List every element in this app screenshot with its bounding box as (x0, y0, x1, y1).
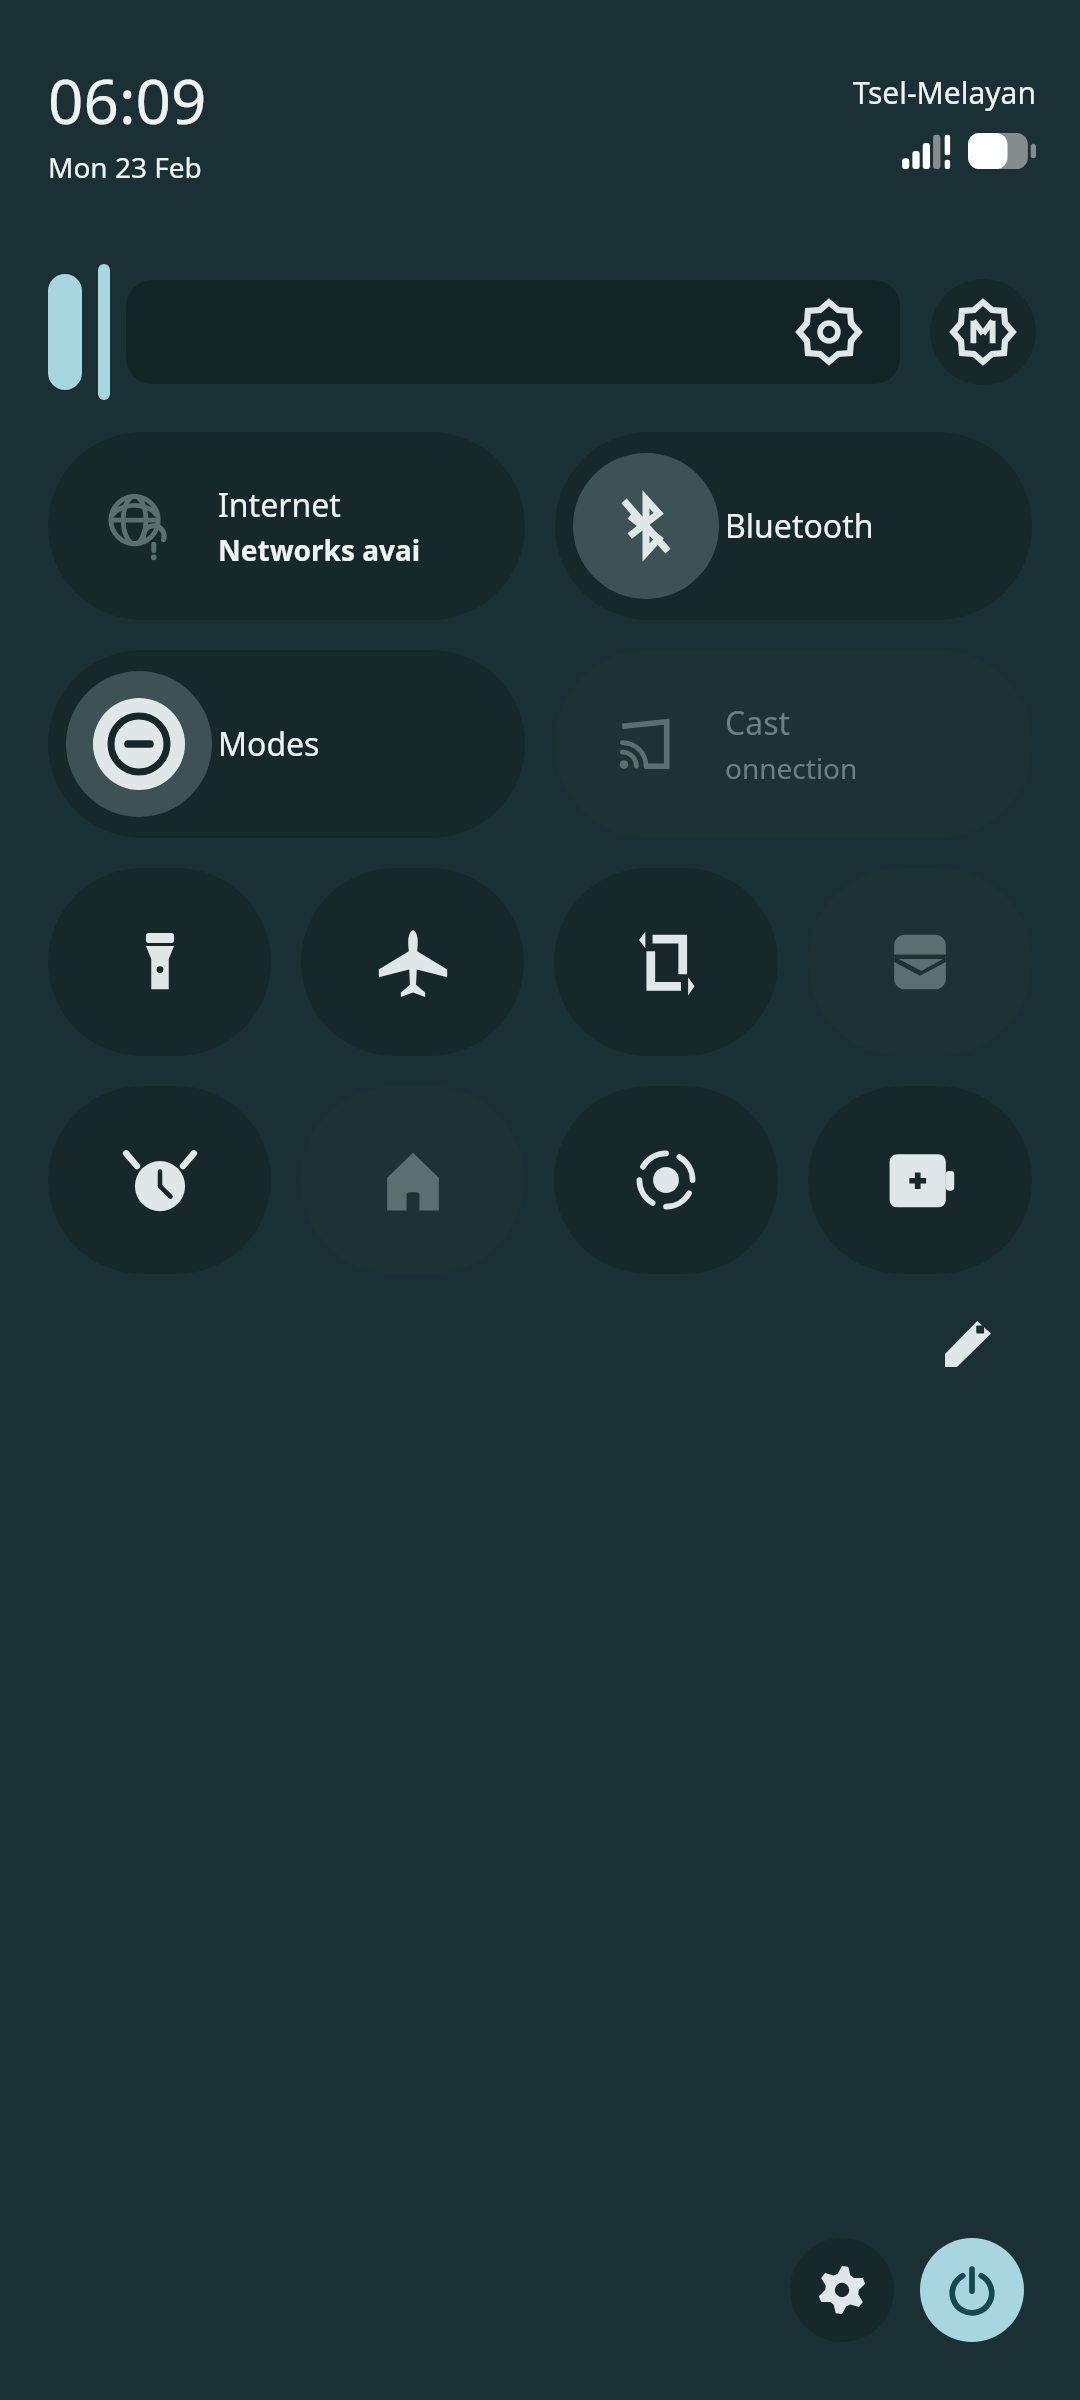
button[interactable] (48, 274, 900, 390)
button[interactable]: Auto rotate (554, 868, 778, 1056)
button[interactable]: Edit tiles (930, 1306, 1006, 1382)
staticText: 06:09 (48, 58, 207, 142)
staticText: Modes (218, 722, 320, 766)
staticText: Cast (725, 701, 791, 745)
button[interactable]: Bluetooth (555, 432, 1032, 620)
button[interactable]: Screen record (554, 1086, 778, 1274)
button[interactable]: Settings (790, 2238, 894, 2342)
staticText: Networks avai (218, 531, 421, 569)
button[interactable]: Flashlight (48, 868, 271, 1056)
staticText: Bluetooth (725, 504, 874, 548)
button[interactable]: Brightness mode (930, 279, 1036, 385)
button[interactable]: Battery saver (808, 1086, 1032, 1274)
staticText: Tsel-Melayan (853, 72, 1036, 113)
button[interactable]: Internet (48, 432, 525, 620)
staticText: Internet (218, 483, 341, 527)
staticText: Mon 23 Feb (48, 148, 202, 186)
button[interactable]: Wallet (808, 868, 1032, 1056)
button[interactable]: Cast (555, 650, 1032, 838)
button[interactable]: Modes (48, 650, 525, 838)
button[interactable]: Airplane mode (301, 868, 524, 1056)
button[interactable]: Alarm (48, 1086, 271, 1274)
button[interactable]: Home (301, 1086, 524, 1274)
staticText: onnection (725, 749, 858, 787)
button[interactable]: Power (920, 2238, 1024, 2342)
